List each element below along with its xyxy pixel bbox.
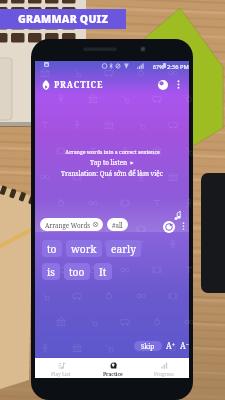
button[interactable]: Progress bbox=[138, 359, 189, 378]
button[interactable]: Increase text size bbox=[165, 339, 176, 352]
button[interactable]: #all bbox=[107, 218, 128, 231]
button[interactable]: Skip bbox=[134, 341, 162, 351]
button[interactable]: Reset bbox=[163, 221, 175, 233]
staticText: GRAMMAR QUIZ bbox=[18, 12, 109, 26]
button[interactable]: Arrange Words bbox=[40, 218, 103, 231]
button[interactable]: Play List bbox=[35, 359, 87, 378]
staticText: to bbox=[47, 242, 57, 256]
staticText: A⁺ bbox=[166, 340, 175, 351]
staticText: Play List bbox=[51, 371, 71, 378]
staticText: Arrange Words bbox=[45, 221, 90, 229]
staticText: Practice bbox=[103, 371, 123, 378]
button[interactable]: App logo bbox=[42, 80, 50, 90]
button[interactable]: early bbox=[106, 240, 141, 257]
staticText: Progress bbox=[154, 371, 174, 378]
staticText: 67% bbox=[153, 63, 164, 70]
staticText: Arrange words into a correct sentence bbox=[65, 148, 160, 155]
button[interactable]: Play audio bbox=[174, 210, 184, 220]
button[interactable]: Decrease text size bbox=[179, 339, 190, 352]
staticText: too bbox=[69, 265, 85, 279]
staticText: work bbox=[71, 242, 97, 256]
staticText: Tap to listen bbox=[90, 158, 128, 167]
button[interactable]: work bbox=[66, 240, 102, 257]
staticText: PRACTICE bbox=[54, 79, 104, 90]
staticText: early bbox=[111, 242, 136, 256]
staticText: Skip bbox=[141, 342, 155, 351]
button[interactable]: More options bbox=[174, 80, 183, 89]
staticText: Translation: Quá sớm để làm việc bbox=[61, 169, 163, 178]
staticText: It bbox=[99, 265, 107, 279]
button[interactable]: is bbox=[42, 263, 60, 280]
staticText: A⁻ bbox=[180, 340, 189, 351]
staticText: 2:36 PM bbox=[167, 63, 189, 71]
button[interactable]: Practice bbox=[87, 359, 138, 378]
staticText: is bbox=[47, 265, 55, 279]
button[interactable]: too bbox=[64, 263, 90, 280]
button[interactable]: to bbox=[42, 240, 62, 257]
button[interactable]: More options bbox=[179, 222, 187, 230]
button[interactable]: It bbox=[94, 263, 112, 280]
button[interactable]: Theme bbox=[158, 80, 168, 90]
staticText: #all bbox=[112, 221, 123, 229]
